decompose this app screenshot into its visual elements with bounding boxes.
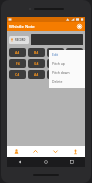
button[interactable]: C4 [9, 70, 26, 79]
staticText: A4 [53, 61, 58, 66]
button[interactable]: Delete [49, 77, 85, 86]
button[interactable]: G4 [28, 59, 45, 68]
staticText: E4 [54, 72, 58, 77]
staticText: Pitch down [52, 70, 70, 75]
button[interactable]: Notes [7, 146, 26, 157]
button[interactable]: E4 [47, 70, 64, 79]
button[interactable]: Pitch down [45, 146, 65, 157]
staticText: C5 [53, 50, 58, 55]
staticText: Pitch up [52, 61, 65, 66]
staticText: F4 [16, 61, 20, 66]
staticText: RECORD [15, 38, 26, 42]
button[interactable]: Pitch up [26, 146, 45, 157]
staticText: A4 [15, 50, 20, 55]
button[interactable]: Settings [76, 23, 83, 30]
button[interactable]: B4 [28, 48, 45, 57]
button[interactable]: RECORD [9, 36, 29, 44]
staticText: B4 [34, 50, 39, 55]
button[interactable]: Recents [59, 157, 85, 167]
staticText: Delete [52, 79, 63, 84]
button[interactable]: Back [7, 157, 33, 167]
button[interactable]: D5 [66, 48, 83, 57]
staticText: Edit [52, 52, 59, 57]
button[interactable]: A4 [47, 59, 64, 68]
button[interactable]: C5 [47, 48, 64, 57]
button[interactable]: F4 [9, 59, 26, 68]
staticText: Whistle Note [9, 24, 35, 30]
button[interactable]: Pitch down [49, 68, 85, 77]
button[interactable]: Pitch up [49, 59, 85, 68]
button[interactable]: A4 [28, 70, 45, 79]
button[interactable]: Home [33, 157, 59, 167]
button[interactable]: Edit [49, 50, 85, 59]
button[interactable]: F4 [66, 70, 83, 79]
staticText: A4 [34, 72, 39, 77]
button[interactable]: Record [65, 146, 85, 157]
button[interactable]: A4 [9, 48, 26, 57]
staticText: G4 [34, 61, 39, 66]
staticText: C4 [15, 72, 20, 77]
